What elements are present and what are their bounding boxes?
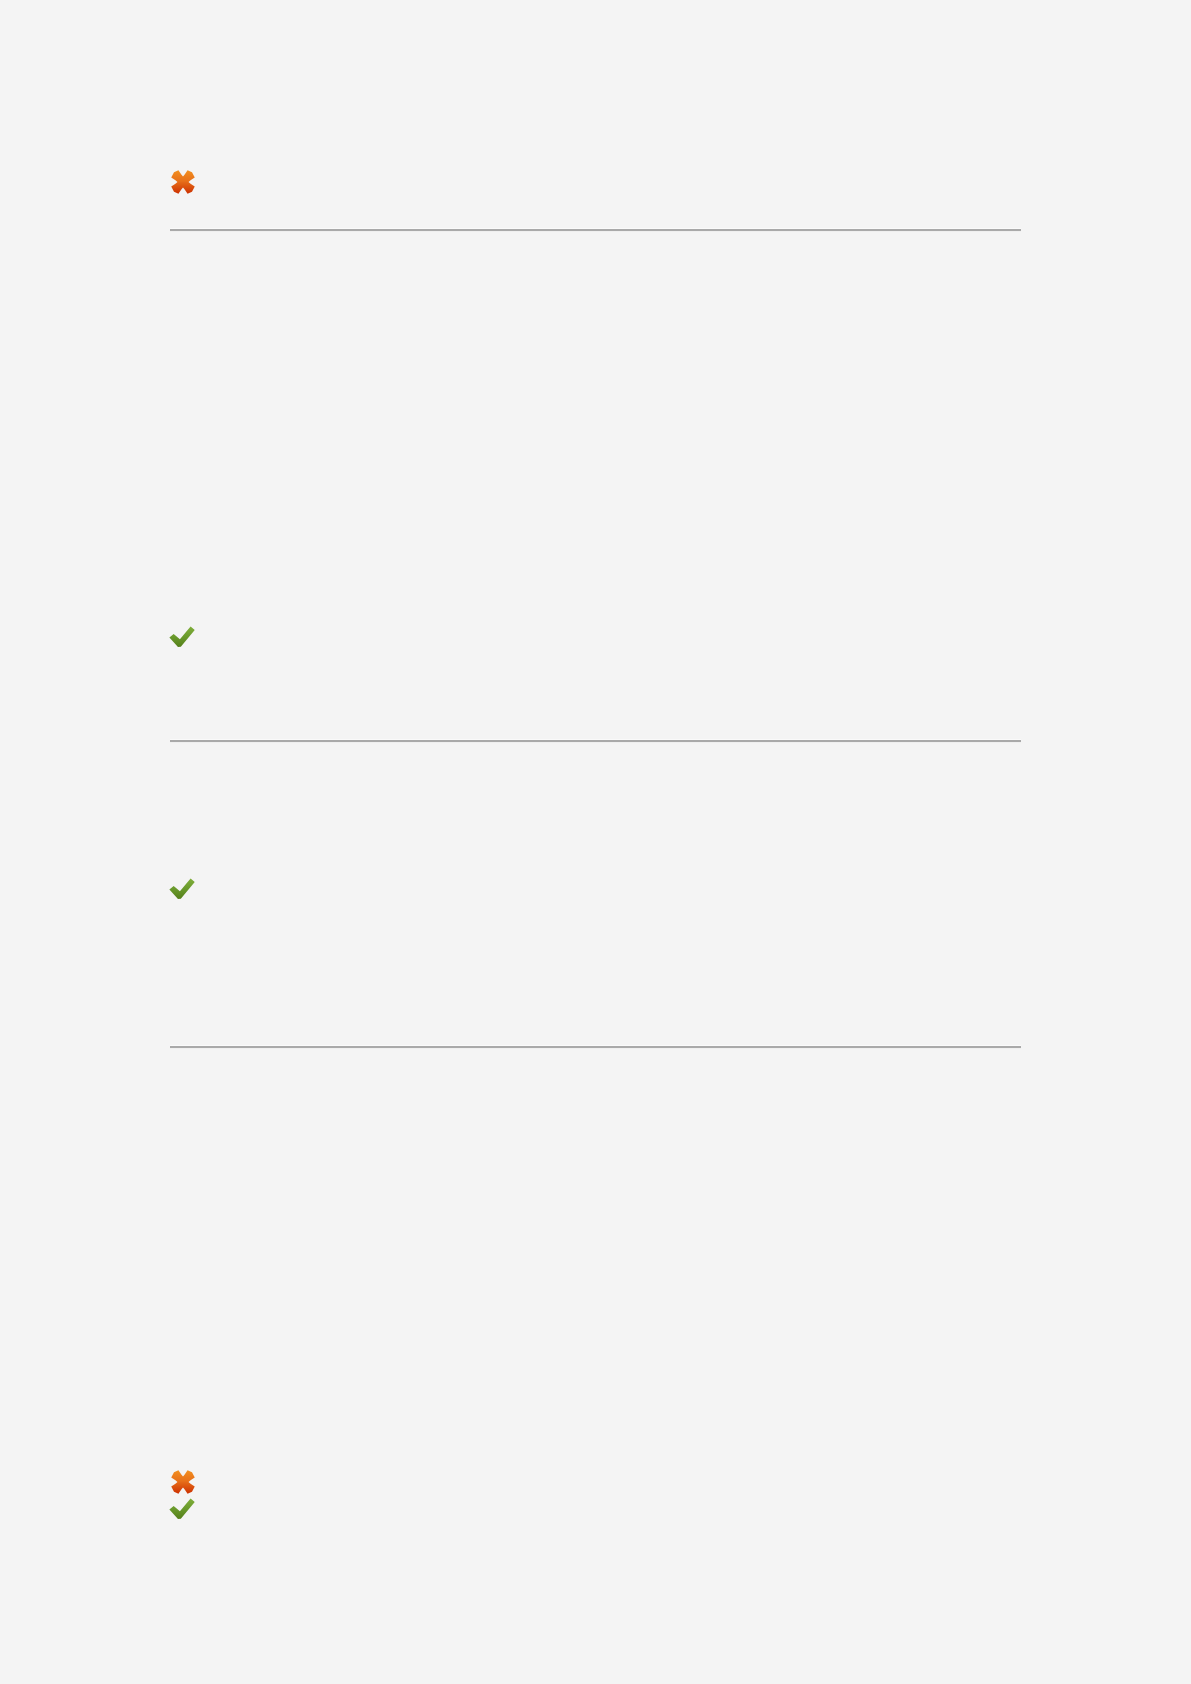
button[interactable]: Supported: [170, 1494, 1021, 1524]
button[interactable]: Not supported: [170, 1460, 1021, 1494]
button[interactable]: Supported: [170, 867, 1021, 1049]
button[interactable]: Not supported: [170, 160, 1021, 232]
button[interactable]: Supported: [170, 615, 1021, 743]
